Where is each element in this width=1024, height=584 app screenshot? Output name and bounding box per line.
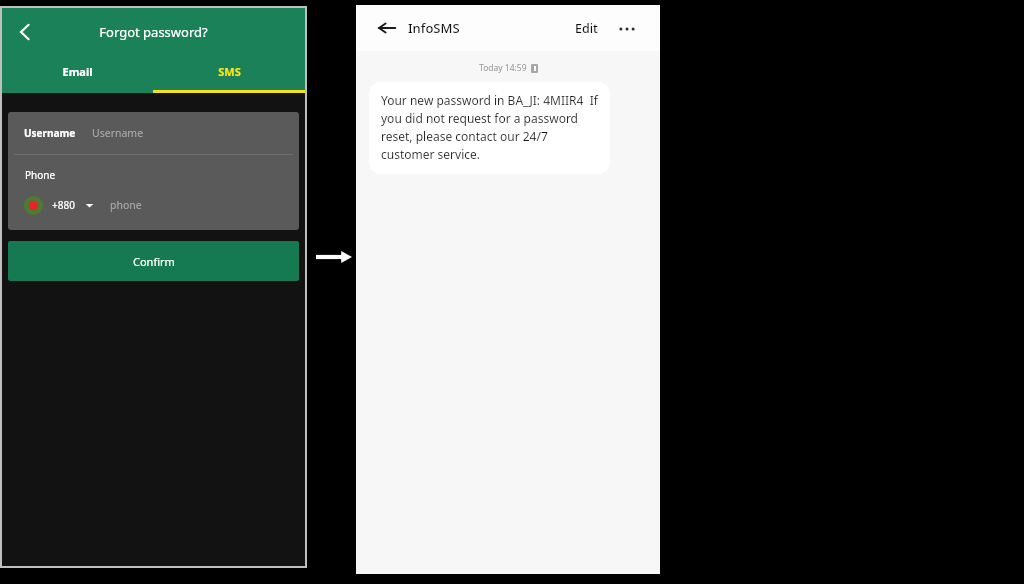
staticText: Username bbox=[24, 126, 76, 140]
button[interactable]: +880 bbox=[8, 190, 299, 220]
staticText: Today 14:59 bbox=[479, 62, 527, 74]
button[interactable]: Back bbox=[2, 9, 48, 55]
button[interactable]: Back bbox=[378, 19, 460, 37]
button[interactable]: Confirm bbox=[8, 241, 299, 281]
button[interactable]: Username bbox=[8, 112, 299, 154]
staticText: Email bbox=[62, 64, 93, 79]
staticText: phone bbox=[110, 198, 142, 212]
button[interactable]: Your new password in BA_JI: 4MIIR4 If yo… bbox=[369, 82, 610, 174]
staticText: InfoSMS bbox=[408, 19, 460, 37]
button[interactable]: Email bbox=[2, 56, 153, 93]
staticText: +880 bbox=[52, 198, 75, 212]
staticText: Confirm bbox=[133, 254, 175, 269]
button[interactable]: More options bbox=[616, 18, 638, 40]
staticText: Forgot password? bbox=[99, 23, 208, 41]
button[interactable]: Edit bbox=[571, 16, 602, 41]
staticText: Username bbox=[92, 126, 144, 140]
staticText: Edit bbox=[575, 20, 598, 37]
staticText: Your new password in BA_JI: 4MIIR4 If yo… bbox=[381, 92, 598, 162]
staticText: Phone bbox=[25, 168, 56, 182]
button[interactable]: SMS bbox=[153, 56, 305, 93]
other: Back bbox=[378, 19, 396, 37]
staticText: SMS bbox=[218, 64, 241, 79]
